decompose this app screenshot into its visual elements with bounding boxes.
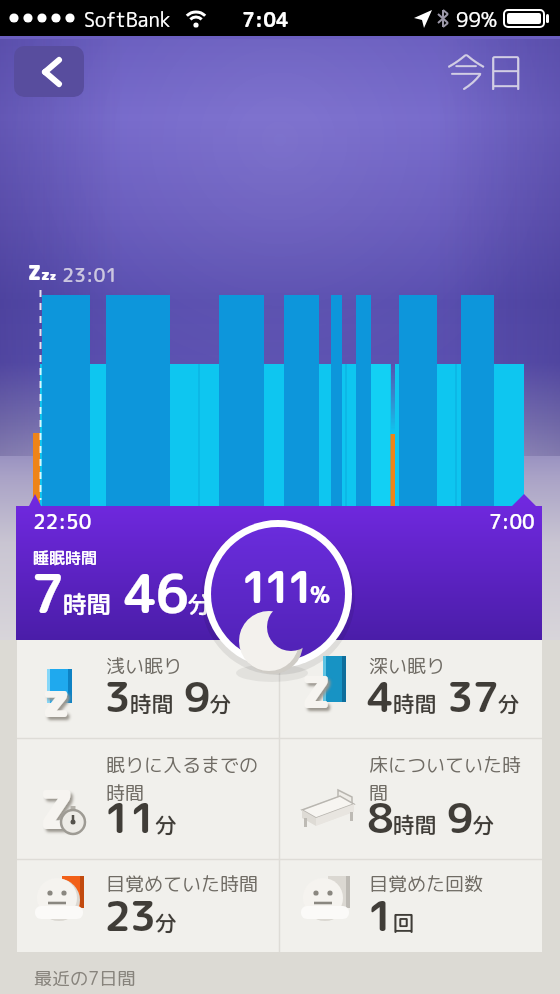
- staticText: 眠りに入るまでの 時間: [106, 752, 259, 806]
- staticText: z: [42, 665, 71, 732]
- staticText: 8時間 9分: [367, 788, 495, 847]
- button[interactable]: 今日: [0, 0, 80, 56]
- staticText: 4時間 37分: [367, 667, 520, 726]
- staticText: SoftBank: [84, 5, 171, 33]
- staticText: 7:00: [489, 507, 535, 535]
- staticText: 浅い眠り: [106, 653, 183, 680]
- staticText: 22:50: [33, 507, 92, 535]
- staticText: Zzz: [28, 258, 57, 286]
- button[interactable]: [280, 859, 542, 952]
- button[interactable]: [280, 640, 542, 738]
- button[interactable]: [17, 640, 279, 738]
- staticText: 目覚めていた時間: [106, 871, 259, 898]
- staticText: 23:01: [62, 262, 118, 289]
- button[interactable]: [17, 859, 279, 952]
- staticText: 1回: [367, 886, 415, 945]
- staticText: 睡眠時間: [33, 547, 98, 569]
- staticText: 7時間 46分: [31, 557, 212, 630]
- button[interactable]: [280, 738, 542, 859]
- staticText: Z: [40, 773, 74, 846]
- staticText: 最近の7日間: [34, 966, 136, 991]
- staticText: Z: [302, 661, 331, 722]
- staticText: 目覚めた回数: [369, 871, 484, 898]
- staticText: 床についていた時 間: [369, 752, 522, 806]
- button[interactable]: [17, 738, 279, 859]
- staticText: 99%: [456, 5, 498, 33]
- staticText: 深い眠り: [369, 653, 446, 680]
- button[interactable]: [14, 46, 84, 97]
- staticText: 3時間 9分: [104, 667, 232, 726]
- staticText: 7:04: [242, 5, 289, 33]
- staticText: 11分: [104, 788, 177, 847]
- staticText: 23分: [104, 886, 177, 945]
- staticText: 111%: [241, 557, 331, 611]
